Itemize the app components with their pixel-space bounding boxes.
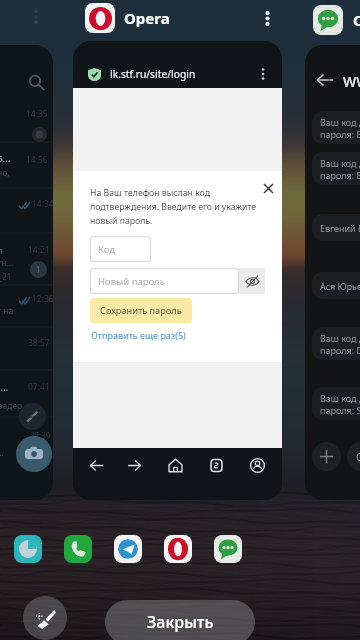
button[interactable]: Ваш код д пароля: Б bbox=[320, 152, 360, 185]
button[interactable]: Camera bbox=[16, 436, 52, 472]
staticText: 14:21 bbox=[28, 244, 50, 256]
button[interactable]: 14:35 bbox=[0, 45, 53, 500]
button[interactable]: Ваш код д пароля: Б bbox=[320, 111, 360, 144]
staticText: 12:36 bbox=[32, 293, 53, 305]
button[interactable]: Евгений Б bbox=[320, 214, 360, 241]
button[interactable]: lk.stf.ru/site/login bbox=[73, 41, 282, 500]
staticText: 38:57 bbox=[28, 337, 50, 349]
button[interactable]: C bbox=[313, 5, 360, 35]
staticText: Код bbox=[98, 243, 116, 256]
button[interactable]: Сохранить пароль bbox=[90, 298, 192, 323]
button[interactable]: Clear all bbox=[23, 596, 67, 640]
staticText: ит на bbox=[0, 305, 14, 317]
staticText: Ваш код д пароля: Б bbox=[320, 157, 360, 181]
staticText: нтн... bbox=[0, 257, 14, 269]
button[interactable]: Show password bbox=[239, 268, 265, 294]
button[interactable]: Home bbox=[162, 452, 188, 478]
button[interactable]: Со bbox=[356, 442, 360, 471]
staticText: Сохранить пароль bbox=[100, 304, 182, 317]
button[interactable]: Profile bbox=[244, 452, 270, 478]
button[interactable]: Back bbox=[305, 45, 360, 500]
button[interactable]: Forward bbox=[121, 452, 147, 478]
button[interactable]: Opera bbox=[164, 535, 192, 563]
button[interactable]: Back bbox=[83, 452, 109, 478]
staticText: Ваш код д пароля: S bbox=[320, 392, 360, 416]
staticText: лно, bbox=[0, 167, 10, 179]
button[interactable]: Закрыть bbox=[105, 600, 255, 640]
staticText: 37:39 bbox=[30, 430, 51, 441]
button[interactable]: Close bbox=[258, 178, 278, 198]
button[interactable]: Новый пароль bbox=[91, 269, 238, 293]
staticText: - л bbox=[0, 244, 3, 256]
staticText: WWW bbox=[343, 72, 360, 91]
button[interactable]: Browser menu bbox=[254, 65, 272, 83]
button[interactable]: Back bbox=[312, 67, 338, 93]
staticText: Евгений Б bbox=[320, 222, 360, 234]
staticText: C bbox=[353, 10, 360, 30]
button[interactable]: More options bbox=[250, 1, 284, 35]
button[interactable]: New message bbox=[312, 442, 341, 471]
staticText: Новый пароль bbox=[98, 275, 165, 288]
staticText: ж... bbox=[0, 381, 9, 394]
staticText: На Ваш телефон выслан код подтверждения.… bbox=[90, 187, 270, 226]
staticText: lk.stf.ru/site/login bbox=[110, 67, 196, 81]
button[interactable]: Telegram bbox=[114, 535, 142, 563]
button[interactable]: Ваш код д пароля: S bbox=[320, 387, 360, 420]
staticText: о... bbox=[0, 447, 4, 459]
staticText: Ваш код д пароля: D bbox=[320, 332, 360, 356]
staticText: 1 bbox=[36, 264, 41, 275]
staticText: 14:34 bbox=[32, 198, 53, 210]
button[interactable]: Clock bbox=[14, 535, 42, 563]
staticText: Ваш код д пароля: Б bbox=[320, 116, 360, 140]
staticText: 07:41 bbox=[28, 381, 50, 393]
staticText: з задер bbox=[0, 400, 23, 412]
button[interactable]: Phone bbox=[64, 535, 92, 563]
button[interactable]: Tabs bbox=[203, 452, 229, 478]
staticText: 14:56 bbox=[26, 154, 48, 166]
staticText: . 6... bbox=[0, 152, 11, 165]
staticText: Закрыть bbox=[147, 611, 214, 633]
button[interactable]: Ася Юрьев bbox=[320, 272, 360, 299]
button[interactable]: Compose bbox=[19, 403, 46, 430]
staticText: Отправить еще раз(5) bbox=[91, 329, 186, 341]
staticText: Ася Юрьев bbox=[320, 280, 360, 292]
button[interactable]: Код bbox=[91, 237, 150, 261]
button[interactable]: Messages bbox=[214, 535, 242, 563]
button[interactable]: Ваш код д пароля: D bbox=[320, 327, 360, 360]
staticText: 14:35 bbox=[26, 108, 48, 120]
staticText: Со bbox=[356, 449, 360, 464]
staticText: 2_21 bbox=[0, 271, 12, 282]
button[interactable]: Отправить еще раз(5) bbox=[90, 329, 187, 341]
staticText: Opera bbox=[124, 8, 170, 28]
